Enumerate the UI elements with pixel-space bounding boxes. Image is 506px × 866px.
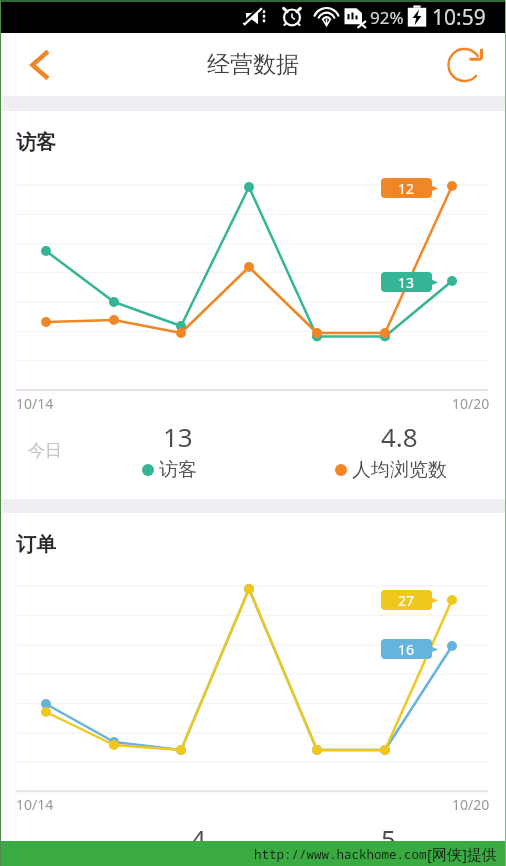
staticText: 订单	[16, 532, 56, 557]
staticText: http://www.hackhome.com	[254, 846, 427, 863]
staticText: 92%	[370, 6, 404, 29]
staticText: 13	[163, 419, 193, 454]
staticText: 10/14	[16, 795, 54, 814]
staticText: 5	[381, 821, 396, 856]
staticText: 访客	[159, 458, 197, 482]
staticText: 16	[398, 640, 415, 659]
staticText: [网侠]提供	[427, 844, 497, 864]
staticText: 4.8	[381, 419, 418, 454]
staticText: 10:59	[432, 3, 486, 32]
staticText: 今日	[28, 440, 62, 461]
staticText: 10/20	[452, 795, 490, 814]
button[interactable]: Refresh	[434, 33, 506, 96]
staticText: 10/14	[16, 394, 54, 413]
staticText: 经营数据	[207, 50, 299, 79]
staticText: 13	[398, 273, 415, 292]
staticText: 12	[398, 179, 415, 198]
staticText: 4	[191, 821, 206, 856]
staticText: 访客	[16, 130, 56, 155]
button[interactable]: Back	[0, 33, 72, 96]
staticText: 人均浏览数	[352, 458, 447, 482]
staticText: 10/20	[452, 394, 490, 413]
staticText: 27	[398, 591, 415, 610]
